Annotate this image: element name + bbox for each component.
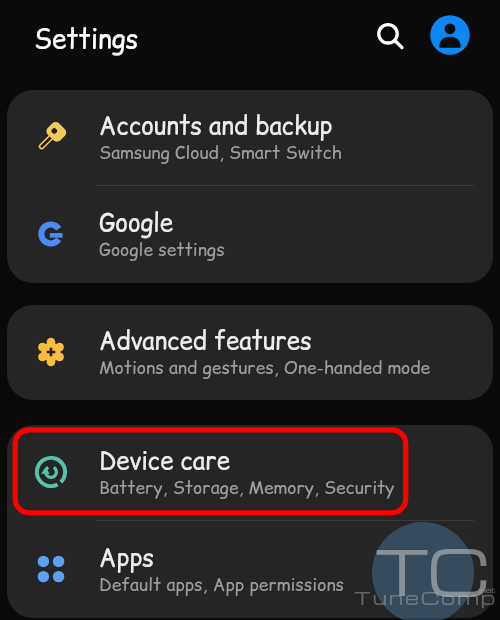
staticText: Settings [34,21,139,57]
staticText: Default apps, App permissions [99,573,345,597]
staticText: Apps [99,541,154,574]
button[interactable]: Account [426,11,473,58]
button[interactable]: Search [364,10,411,57]
staticText: Device care [99,444,230,477]
staticText: .net [479,585,496,595]
staticText: TC [374,527,487,612]
staticText: TuneComp [354,584,498,610]
button[interactable]: Google [7,186,493,283]
button[interactable]: Accounts and backup [7,90,493,185]
staticText: Battery, Storage, Memory, Security [99,476,395,500]
button[interactable]: Advanced features [7,305,493,400]
staticText: Accounts and backup [99,109,333,142]
staticText: Samsung Cloud, Smart Switch [99,141,342,165]
staticText: Google settings [99,238,225,262]
staticText: Advanced features [99,324,312,357]
staticText: Google [99,206,174,239]
staticText: Motions and gestures, One-handed mode [99,356,431,380]
button[interactable]: Device care [7,425,493,520]
button[interactable]: Apps [7,521,493,618]
